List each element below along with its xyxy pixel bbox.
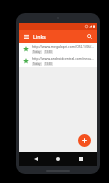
button[interactable]: Open navigation menu — [22, 32, 31, 41]
staticText: 13:30 — [45, 50, 52, 54]
staticText: 13:30 — [45, 62, 52, 66]
button[interactable]: http://www.androidcentral.com/nexus-6-..… — [19, 55, 97, 67]
staticText: Today — [33, 50, 41, 54]
button[interactable]: Home — [52, 153, 64, 165]
staticText: Today — [33, 62, 41, 66]
staticText: http://www.megalopri.com/OSI-1/06/T1/s..… — [32, 44, 94, 49]
button[interactable]: Back — [30, 153, 42, 165]
button[interactable]: Search — [85, 32, 94, 41]
button[interactable]: Recents — [75, 153, 87, 165]
button[interactable]: http://www.megalopri.com/OSI-1/06/T1/s..… — [19, 43, 97, 55]
button[interactable]: Add link — [78, 134, 91, 147]
staticText: http://www.androidcentral.com/nexus-6-..… — [32, 56, 94, 61]
staticText: Links — [33, 33, 46, 40]
